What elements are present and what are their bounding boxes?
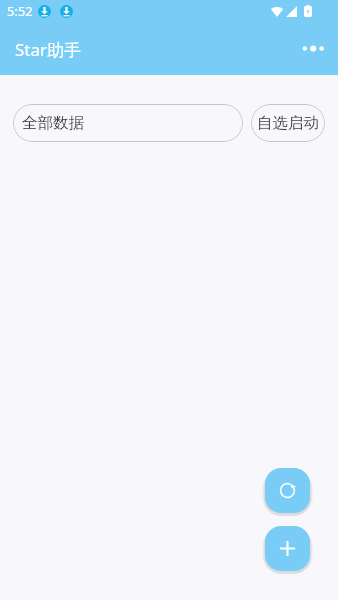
staticText: 全部数据 [22,113,84,133]
button[interactable]: 自选启动 [251,104,325,142]
button[interactable]: More options [295,34,331,64]
button[interactable]: Refresh [265,468,310,513]
button[interactable]: 全部数据 [13,104,243,142]
staticText: 自选启动 [257,113,319,133]
staticText: 5:52 [7,2,33,20]
button[interactable]: Add [265,526,310,571]
staticText: Star助手 [15,38,82,61]
